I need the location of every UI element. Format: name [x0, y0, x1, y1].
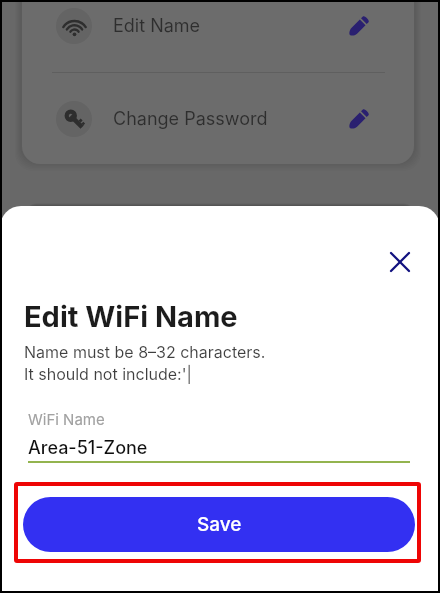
- button[interactable]: Close: [381, 243, 419, 281]
- staticText: Name must be 8–32 characters. It should …: [24, 342, 266, 384]
- staticText: Edit Name: [113, 15, 201, 37]
- staticText: Change Password: [113, 108, 268, 130]
- button[interactable]: Edit: [339, 6, 379, 46]
- staticText: WiFi Name: [28, 410, 105, 428]
- button[interactable]: Edit: [339, 99, 379, 139]
- button[interactable]: Edit Name: [22, 0, 414, 72]
- button[interactable]: Save: [23, 497, 415, 552]
- button[interactable]: Change Password: [22, 73, 414, 164]
- staticText: Edit WiFi Name: [24, 299, 238, 334]
- staticText: Save: [197, 513, 242, 536]
- staticText: Area-51-Zone: [28, 437, 148, 459]
